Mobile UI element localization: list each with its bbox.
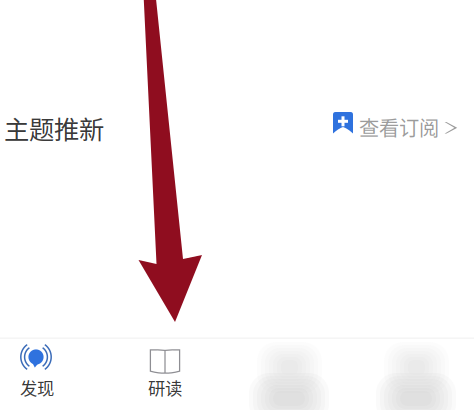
staticText: 研读 (148, 375, 182, 400)
staticText: 主题推新 (4, 110, 104, 146)
staticText: 查看订阅 (359, 112, 439, 142)
button[interactable]: 查看订阅 (333, 112, 463, 142)
button[interactable]: 发现 (0, 341, 101, 410)
button[interactable]: 研读 (101, 341, 229, 410)
staticText: 发现 (20, 375, 54, 400)
